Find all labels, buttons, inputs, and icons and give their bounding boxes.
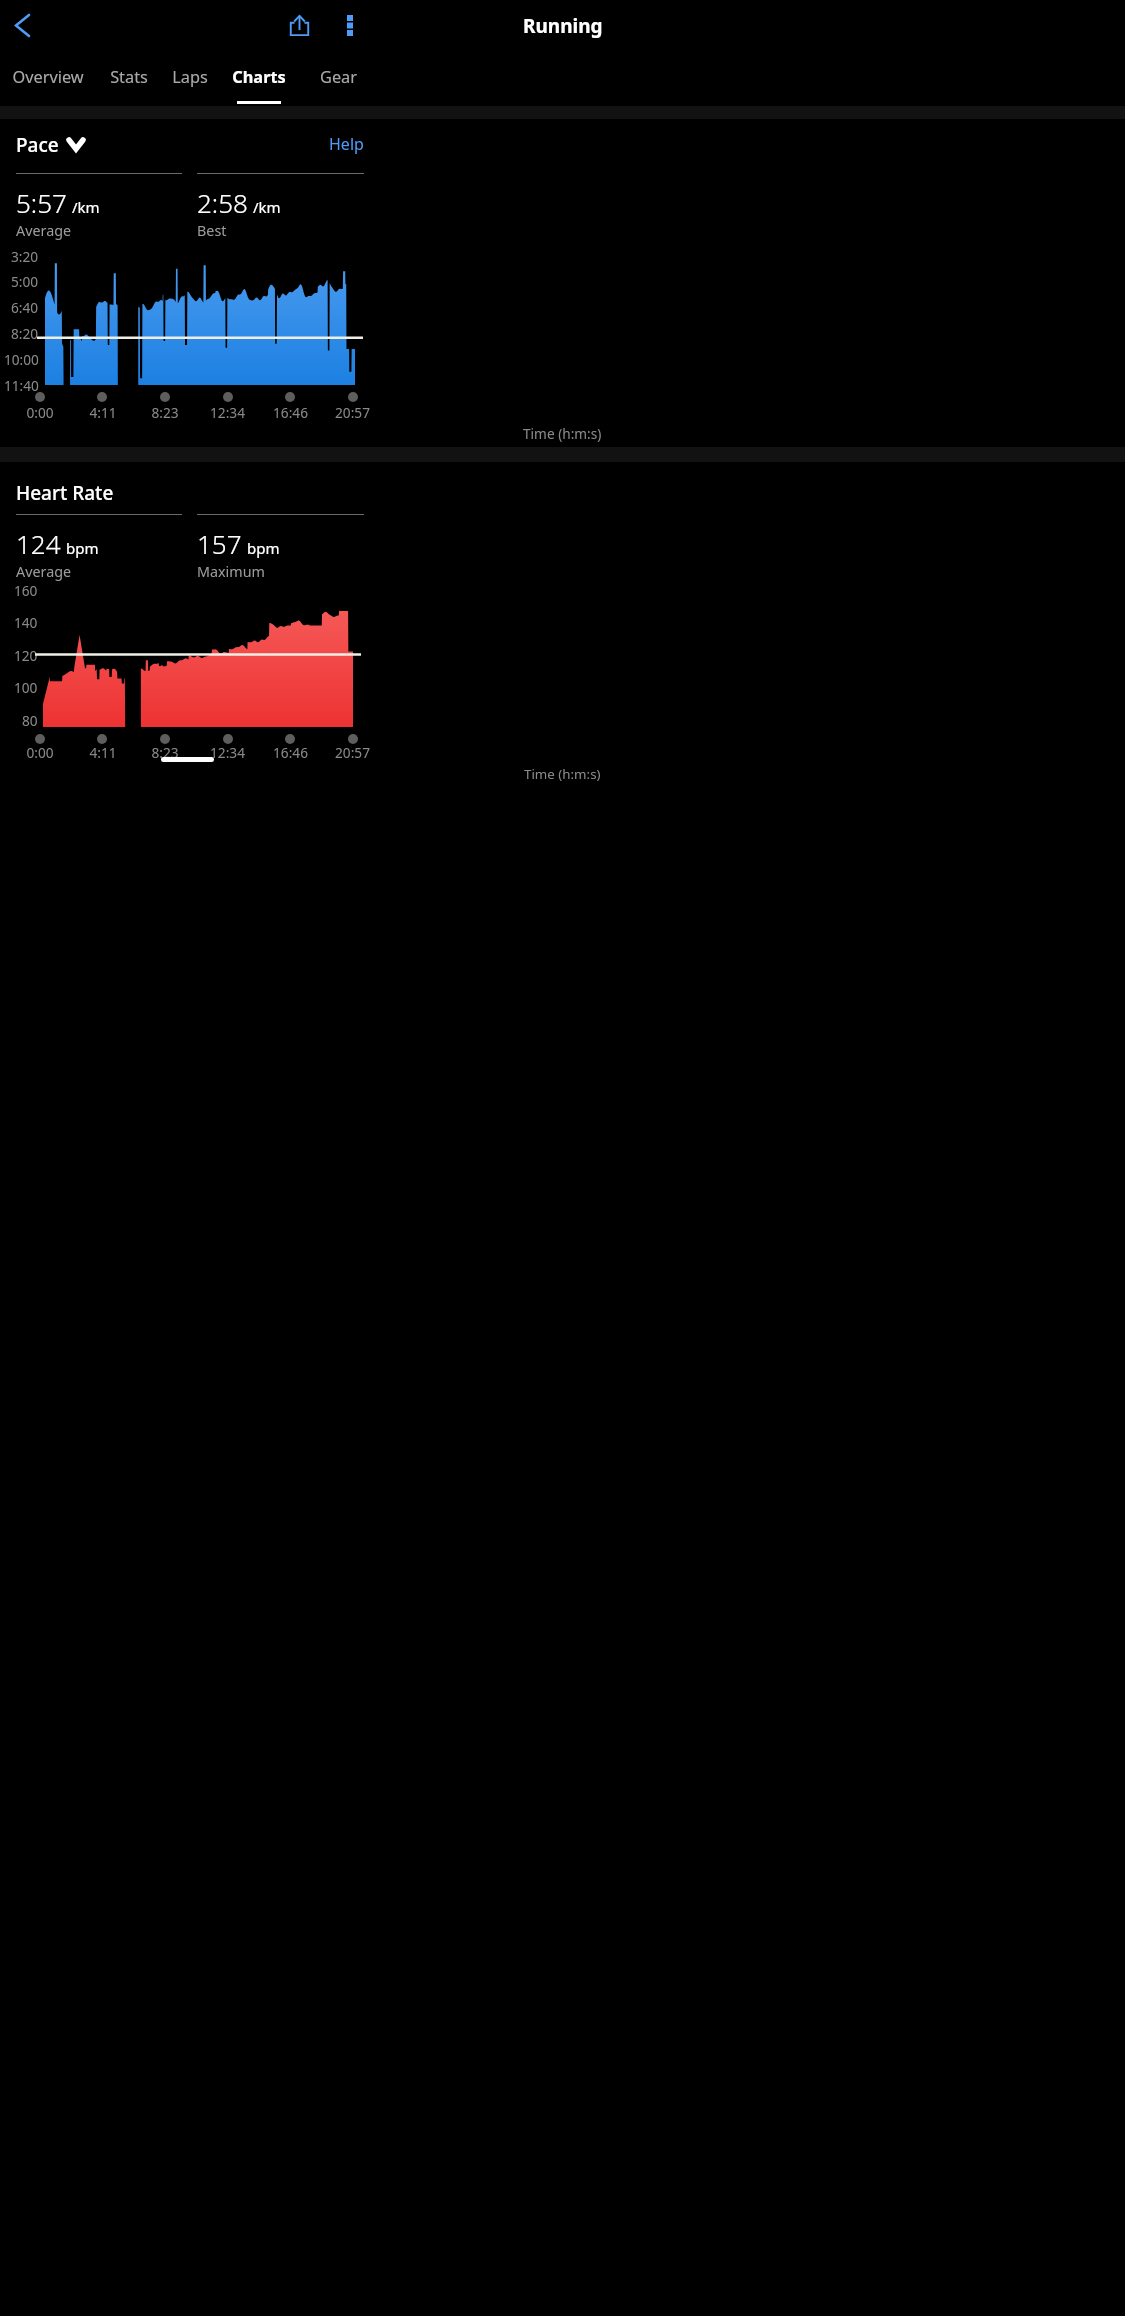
staticText: 120: [14, 646, 38, 665]
staticText: Heart Rate: [16, 480, 114, 504]
staticText: 11:40: [4, 376, 39, 395]
staticText: /km: [72, 197, 100, 217]
staticText: bpm: [66, 538, 99, 558]
staticText: 8:23: [151, 403, 179, 422]
staticText: 0:00: [26, 743, 54, 762]
staticText: Help: [329, 133, 364, 155]
staticText: 16:46: [273, 743, 308, 762]
staticText: 100: [14, 678, 38, 697]
staticText: 160: [14, 581, 38, 600]
staticText: 124: [16, 526, 61, 561]
staticText: 157: [197, 526, 242, 561]
button[interactable]: Share: [283, 9, 316, 42]
staticText: Overview: [12, 66, 84, 88]
button[interactable]: Help: [323, 132, 370, 156]
staticText: Charts: [232, 66, 286, 88]
button[interactable]: Charts: [229, 59, 289, 95]
staticText: Maximum: [197, 562, 265, 582]
staticText: Time (h:m:s): [523, 424, 602, 443]
staticText: 5:57: [16, 185, 67, 220]
staticText: bpm: [247, 538, 280, 558]
staticText: 4:11: [89, 403, 117, 422]
staticText: 2:58: [197, 185, 248, 220]
staticText: 6:40: [11, 298, 39, 317]
staticText: 12:34: [210, 403, 245, 422]
staticText: Running: [523, 13, 603, 39]
staticText: 80: [22, 711, 38, 730]
staticText: 10:00: [4, 350, 39, 369]
staticText: Time (h:m:s): [524, 765, 601, 783]
staticText: 8:23: [151, 743, 179, 762]
staticText: 16:46: [273, 403, 308, 422]
staticText: Average: [16, 562, 72, 582]
staticText: 5:00: [11, 272, 39, 291]
button[interactable]: Overview: [10, 59, 85, 95]
staticText: 20:57: [335, 743, 370, 762]
button[interactable]: Gear: [311, 59, 366, 95]
staticText: 20:57: [335, 403, 370, 422]
button[interactable]: Pace: [16, 132, 83, 156]
staticText: /km: [253, 197, 281, 217]
staticText: 3:20: [11, 247, 39, 266]
staticText: Average: [16, 221, 72, 241]
staticText: Pace: [16, 132, 59, 156]
button[interactable]: Stats: [101, 59, 156, 95]
staticText: 12:34: [210, 743, 245, 762]
staticText: Best: [197, 221, 227, 241]
staticText: 0:00: [26, 403, 54, 422]
staticText: 8:20: [11, 324, 39, 343]
staticText: 4:11: [89, 743, 117, 762]
button[interactable]: Laps: [165, 59, 214, 95]
staticText: 140: [14, 613, 38, 632]
button[interactable]: Back: [6, 9, 39, 42]
button[interactable]: More options: [333, 9, 366, 42]
staticText: Gear: [320, 66, 357, 88]
staticText: Laps: [172, 66, 208, 88]
staticText: Stats: [110, 66, 148, 88]
